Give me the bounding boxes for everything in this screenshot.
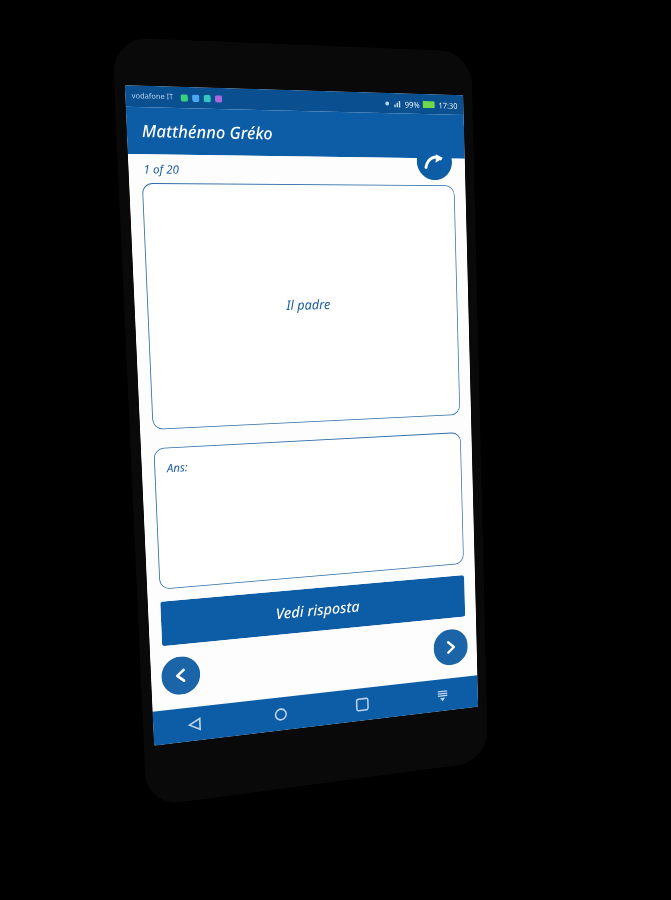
staticText: Vedi risposta <box>275 596 360 623</box>
staticText: 1 of 20 <box>143 161 180 177</box>
button[interactable]: Menu <box>431 683 453 708</box>
staticText: Il padre <box>286 295 331 314</box>
staticText: vodafone IT <box>131 91 174 103</box>
button[interactable]: Home <box>268 701 292 727</box>
staticText: 17:30 <box>438 99 458 111</box>
button[interactable]: Ans: <box>153 432 464 589</box>
button[interactable]: Back <box>181 711 207 737</box>
staticText: Matthénno Gréko <box>141 119 274 145</box>
button[interactable]: Next <box>433 628 468 667</box>
staticText: 99% <box>405 98 420 110</box>
staticText: Ans: <box>166 459 189 475</box>
button[interactable]: Il padre <box>142 183 460 430</box>
button[interactable]: Vedi risposta <box>160 575 465 646</box>
button[interactable]: Recents <box>351 692 374 717</box>
button[interactable]: Share <box>416 142 452 180</box>
button[interactable]: Previous <box>161 655 201 697</box>
